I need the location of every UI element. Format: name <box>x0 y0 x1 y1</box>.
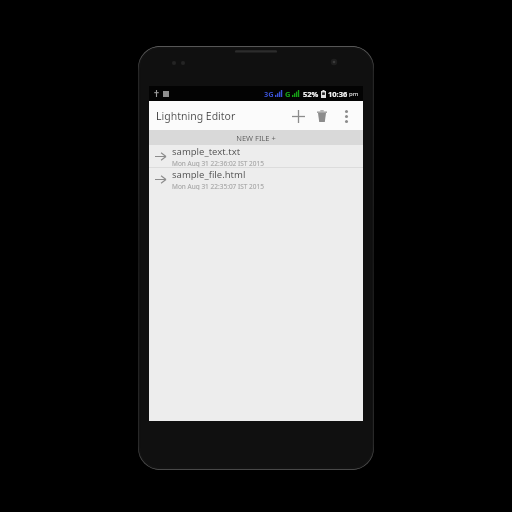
button[interactable]: sample_text.txt <box>149 145 363 168</box>
staticText: Mon Aug 31 22:36:02 IST 2015 <box>172 159 264 167</box>
staticText: 3G <box>264 89 274 99</box>
button[interactable]: NEW FILE + <box>149 130 363 145</box>
staticText: 52% <box>303 89 319 99</box>
staticText: pm <box>349 90 359 98</box>
button[interactable]: More options <box>334 104 358 128</box>
staticText: sample_file.html <box>172 168 246 181</box>
staticText: Lightning Editor <box>156 109 236 123</box>
staticText: G <box>285 89 291 99</box>
staticText: 10:36 <box>328 89 348 99</box>
button[interactable]: New file <box>286 104 310 128</box>
staticText: Mon Aug 31 22:35:07 IST 2015 <box>172 182 264 190</box>
staticText: NEW FILE + <box>236 133 276 143</box>
staticText: sample_text.txt <box>172 145 241 158</box>
button[interactable]: Delete <box>310 104 334 128</box>
button[interactable]: sample_file.html <box>149 168 363 190</box>
